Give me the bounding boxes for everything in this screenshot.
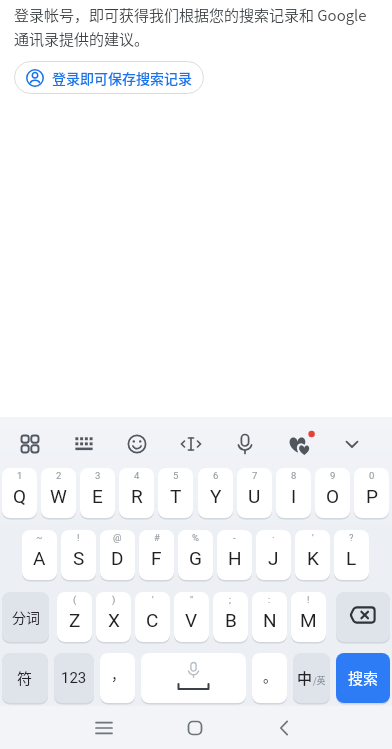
button[interactable] [338, 430, 366, 458]
staticText: A [33, 547, 46, 569]
button[interactable]: 1 [2, 468, 37, 518]
button[interactable]: · [256, 530, 291, 580]
button[interactable]: ~ [22, 530, 57, 580]
button[interactable]: 3 [80, 468, 115, 518]
button[interactable] [181, 714, 209, 742]
staticText: · [272, 532, 275, 543]
button[interactable]: ， [100, 653, 135, 703]
staticText: 符 [17, 667, 33, 689]
button[interactable]: 0 [354, 468, 389, 518]
button[interactable]: ! [291, 592, 326, 642]
staticText: ! [307, 594, 310, 605]
staticText: V [185, 609, 198, 631]
button[interactable]: 7 [237, 468, 272, 518]
button[interactable]: ? [334, 530, 369, 580]
staticText: L [346, 547, 357, 569]
staticText: - [233, 532, 236, 543]
staticText: B [225, 609, 237, 631]
staticText: ) [112, 594, 116, 605]
staticText: " [190, 594, 194, 605]
staticText: K [307, 547, 319, 569]
staticText: Z [69, 609, 81, 631]
button[interactable]: - [217, 530, 252, 580]
button[interactable]: 123 [54, 653, 94, 703]
button[interactable]: ; [213, 592, 248, 642]
staticText: 8 [291, 470, 297, 481]
button[interactable] [16, 430, 44, 458]
staticText: F [151, 547, 162, 569]
staticText: : [268, 594, 271, 605]
staticText: 123 [61, 669, 87, 687]
button[interactable]: ' [135, 592, 170, 642]
staticText: H [228, 547, 242, 569]
staticText: G [189, 547, 202, 569]
button[interactable]: ( [57, 592, 92, 642]
button[interactable]: @ [100, 530, 135, 580]
staticText: 。 [263, 666, 277, 686]
button[interactable] [336, 592, 390, 642]
button[interactable]: % [178, 530, 213, 580]
staticText: N [263, 609, 277, 631]
button[interactable]: 9 [315, 468, 350, 518]
button[interactable]: 登录即可保存搜索记录 [14, 61, 204, 94]
staticText: 3 [95, 470, 101, 481]
staticText: W [50, 485, 67, 507]
staticText: 2 [56, 470, 62, 481]
button[interactable] [90, 714, 118, 742]
button[interactable] [283, 424, 313, 454]
staticText: 登录帐号，即可获得我们根据您的搜索记录和 Google 通讯录提供的建议。 [14, 4, 384, 50]
staticText: 5 [173, 470, 179, 481]
button[interactable]: ) [96, 592, 131, 642]
staticText: ， [111, 664, 125, 684]
staticText: ( [73, 594, 77, 605]
button[interactable]: 6 [198, 468, 233, 518]
staticText: E [92, 485, 103, 507]
staticText: # [154, 532, 160, 543]
button[interactable]: 分词 [2, 592, 49, 642]
staticText: M [300, 609, 317, 631]
staticText: ? [349, 532, 354, 543]
staticText: @ [113, 532, 122, 543]
staticText: 0 [369, 470, 375, 481]
staticText: ' [312, 532, 314, 543]
staticText: 4 [134, 470, 140, 481]
button[interactable] [123, 430, 151, 458]
staticText: J [268, 547, 279, 569]
staticText: O [326, 485, 340, 507]
button[interactable]: 5 [158, 468, 193, 518]
staticText: D [111, 547, 124, 569]
button[interactable]: 中 [293, 653, 330, 703]
button[interactable] [141, 653, 246, 703]
staticText: T [170, 485, 182, 507]
staticText: ! [77, 532, 80, 543]
button[interactable]: 8 [276, 468, 311, 518]
button[interactable] [177, 430, 205, 458]
button[interactable]: 搜索 [336, 653, 390, 703]
staticText: R [131, 485, 143, 507]
button[interactable]: 2 [41, 468, 76, 518]
button[interactable]: ' [295, 530, 330, 580]
staticText: U [248, 485, 261, 507]
staticText: 6 [213, 470, 219, 481]
staticText: 搜索 [348, 667, 379, 689]
button[interactable]: " [174, 592, 209, 642]
staticText: S [73, 547, 85, 569]
button[interactable] [270, 714, 298, 742]
button[interactable] [70, 430, 98, 458]
button[interactable]: 符 [2, 653, 48, 703]
button[interactable]: # [139, 530, 174, 580]
staticText: 7 [252, 470, 258, 481]
staticText: Q [13, 485, 27, 507]
staticText: % [192, 532, 199, 543]
staticText: P [366, 485, 378, 507]
button[interactable] [231, 430, 259, 458]
button[interactable]: ! [61, 530, 96, 580]
staticText: /英 [313, 674, 326, 687]
staticText: I [291, 485, 297, 507]
staticText: ; [229, 594, 232, 605]
staticText: C [146, 609, 159, 631]
button[interactable]: 4 [119, 468, 154, 518]
button[interactable]: 。 [252, 653, 287, 703]
staticText: X [108, 609, 120, 631]
button[interactable]: : [252, 592, 287, 642]
